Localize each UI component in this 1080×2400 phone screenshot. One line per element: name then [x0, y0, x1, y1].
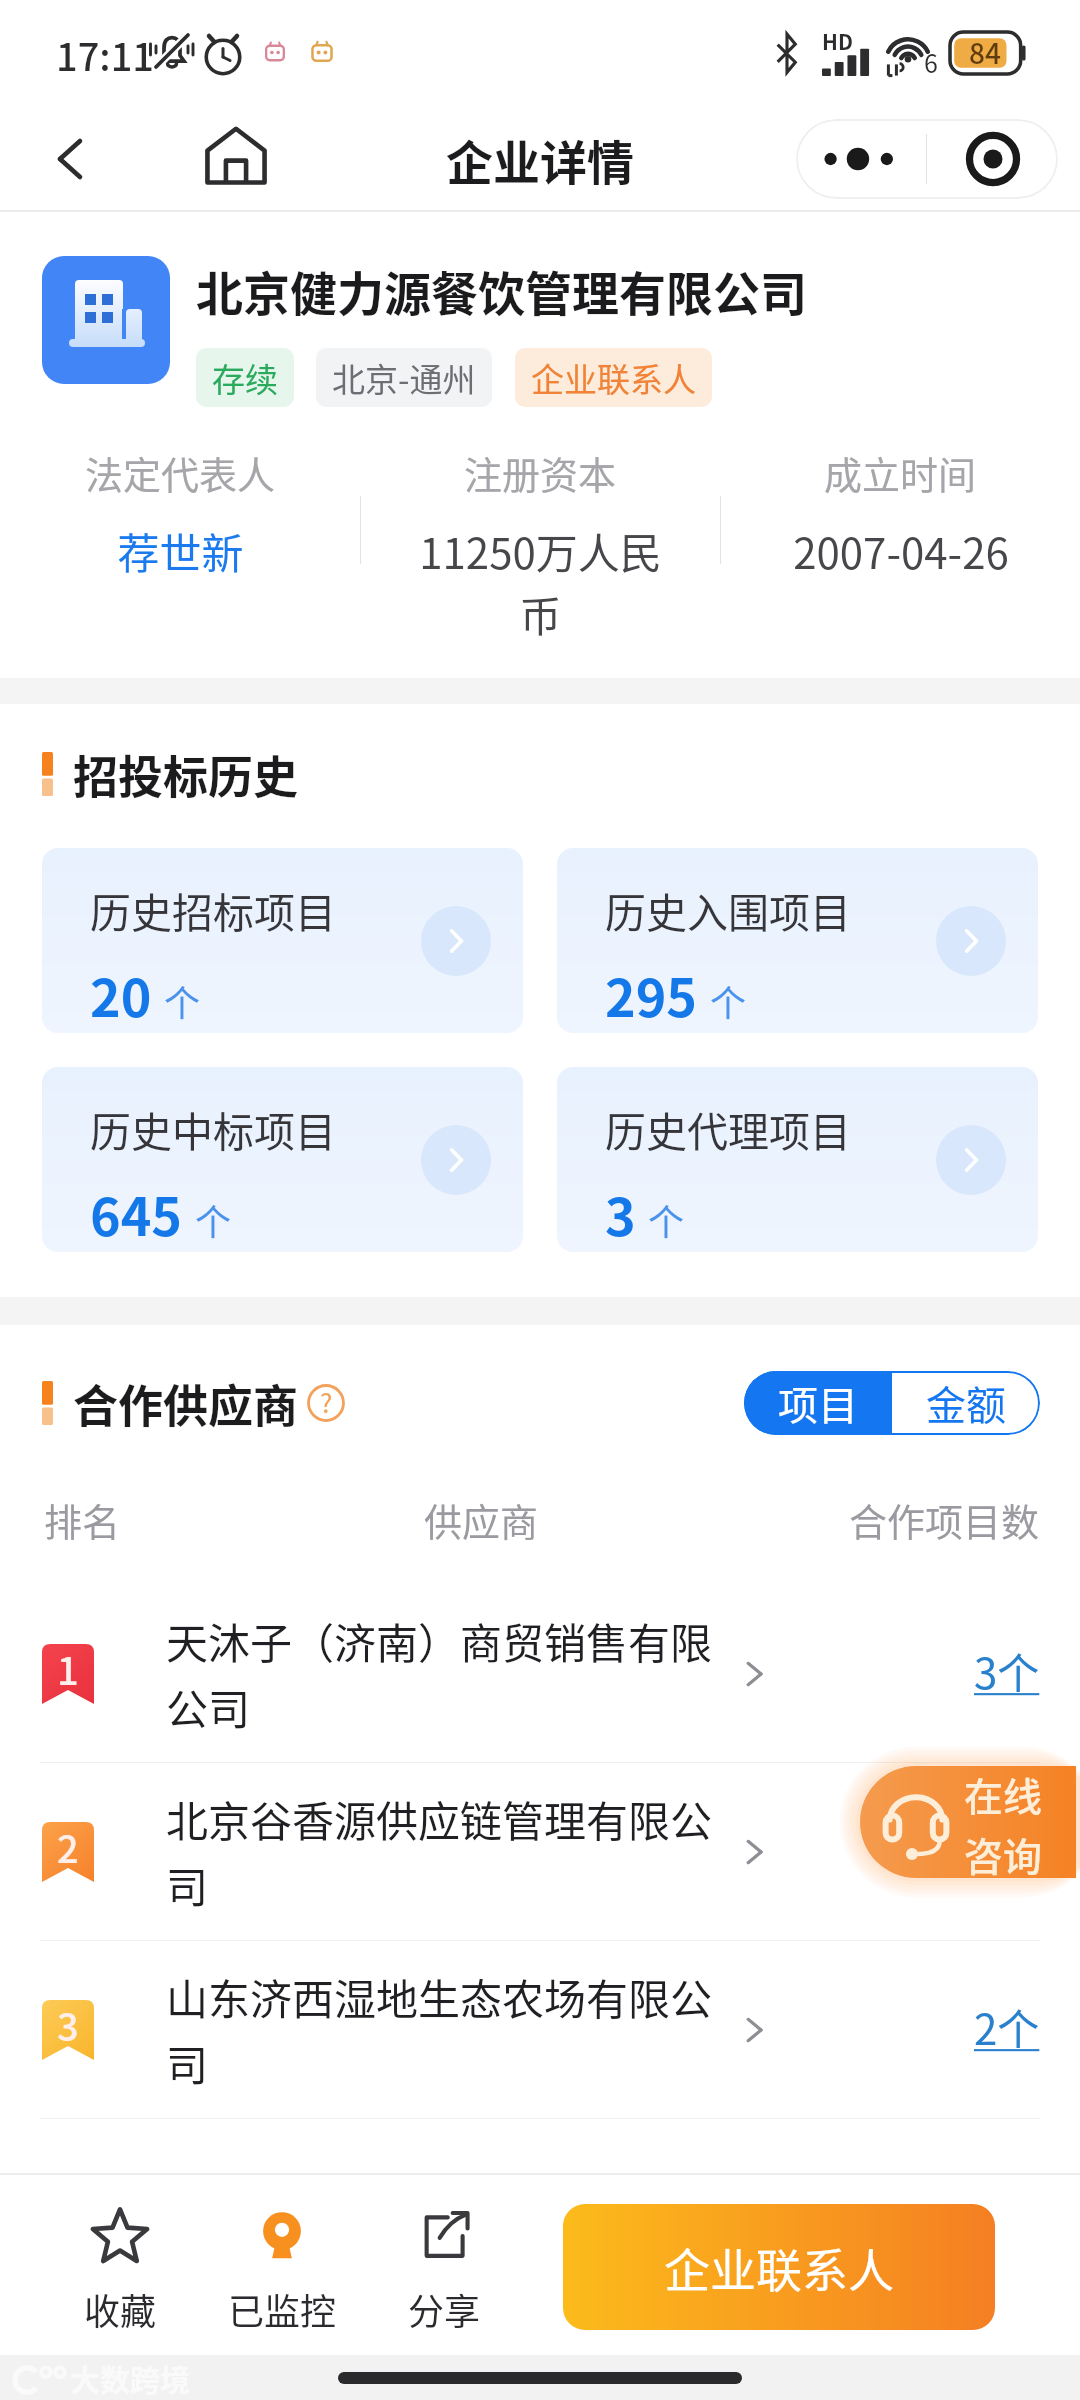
- staticText: 山东济西湿地生态农场有限公司: [166, 1966, 718, 2093]
- staticText: 3个: [974, 1640, 1040, 1701]
- button[interactable]: 已监控: [220, 2205, 344, 2335]
- staticText: 17:11: [56, 27, 154, 82]
- staticText: 11250万人民币: [413, 520, 668, 644]
- button[interactable]: More options: [796, 119, 926, 199]
- staticText: HD: [822, 26, 853, 56]
- staticText: 2007-04-26: [793, 520, 1009, 581]
- button[interactable]: Online consultation: [860, 1766, 1076, 1878]
- button[interactable]: 项目: [744, 1371, 892, 1435]
- staticText: 分享: [408, 2283, 481, 2335]
- staticText: 2个: [974, 1996, 1040, 2057]
- staticText: 6: [924, 44, 938, 80]
- staticText: 大数跨境: [70, 2356, 190, 2399]
- staticText: 个: [164, 975, 201, 1027]
- staticText: 成立时间: [824, 445, 977, 500]
- staticText: 2: [57, 1819, 79, 1874]
- staticText: 收藏: [84, 2283, 157, 2335]
- staticText: 存续: [212, 354, 278, 402]
- staticText: 历史入围项目: [605, 880, 851, 939]
- staticText: 合作项目数: [849, 1492, 1040, 1547]
- button[interactable]: 1: [0, 1585, 1080, 1762]
- staticText: 招投标历史: [73, 742, 299, 806]
- staticText: 天沐子（济南）商贸销售有限公司: [166, 1610, 718, 1737]
- button[interactable]: Back: [34, 123, 106, 195]
- button[interactable]: Close mini program: [927, 119, 1058, 199]
- staticText: 历史代理项目: [605, 1099, 851, 1158]
- staticText: 金额: [926, 1374, 1006, 1432]
- staticText: 荐世新: [117, 520, 244, 581]
- button[interactable]: 收藏: [58, 2205, 182, 2335]
- staticText: 排名: [44, 1492, 121, 1547]
- staticText: 个: [648, 1194, 685, 1246]
- staticText: ?: [320, 1383, 333, 1421]
- staticText: 已监控: [228, 2283, 337, 2335]
- staticText: 北京谷香源供应链管理有限公司: [166, 1788, 718, 1915]
- staticText: 个: [710, 975, 747, 1027]
- button[interactable]: 历史入围项目: [557, 848, 1038, 1033]
- staticText: 个: [195, 1194, 232, 1246]
- staticText: 在线: [964, 1766, 1043, 1822]
- button[interactable]: 注册资本: [361, 445, 720, 651]
- button[interactable]: Help: [307, 1384, 345, 1422]
- staticText: 企业联系人: [531, 354, 696, 402]
- staticText: 历史招标项目: [90, 880, 336, 939]
- staticText: 合作供应商: [73, 1371, 299, 1435]
- staticText: 北京健力源餐饮管理有限公司: [196, 256, 807, 324]
- staticText: 3: [605, 1176, 636, 1251]
- button[interactable]: 金额: [892, 1371, 1040, 1435]
- button[interactable]: 成立时间: [721, 445, 1080, 651]
- button[interactable]: 企业联系人: [563, 2204, 995, 2330]
- button[interactable]: 存续: [196, 348, 294, 407]
- button[interactable]: 历史中标项目: [42, 1067, 523, 1252]
- staticText: 历史中标项目: [90, 1099, 336, 1158]
- staticText: 645: [90, 1176, 183, 1251]
- button[interactable]: 历史代理项目: [557, 1067, 1038, 1252]
- staticText: 北京-通州: [332, 354, 476, 402]
- staticText: 295: [605, 957, 698, 1032]
- staticText: 项目: [778, 1374, 858, 1432]
- button[interactable]: 企业联系人: [515, 348, 712, 407]
- staticText: 企业联系人: [664, 2234, 894, 2301]
- staticText: 20: [90, 957, 152, 1032]
- button[interactable]: 3: [0, 1941, 1080, 2118]
- staticText: 注册资本: [464, 445, 617, 500]
- button[interactable]: 分享: [382, 2205, 506, 2335]
- button[interactable]: 法定代表人: [0, 445, 360, 651]
- staticText: 咨询: [964, 1826, 1043, 1878]
- button[interactable]: 历史招标项目: [42, 848, 523, 1033]
- staticText: 3: [57, 1997, 79, 2052]
- staticText: 84: [969, 32, 1001, 73]
- staticText: 法定代表人: [85, 445, 276, 500]
- staticText: 1: [57, 1641, 79, 1696]
- button[interactable]: 2: [0, 1763, 1080, 1940]
- staticText: 供应商: [424, 1492, 539, 1547]
- button[interactable]: 北京-通州: [316, 348, 492, 407]
- button[interactable]: Home: [194, 117, 278, 201]
- staticText: 企业详情: [446, 125, 634, 193]
